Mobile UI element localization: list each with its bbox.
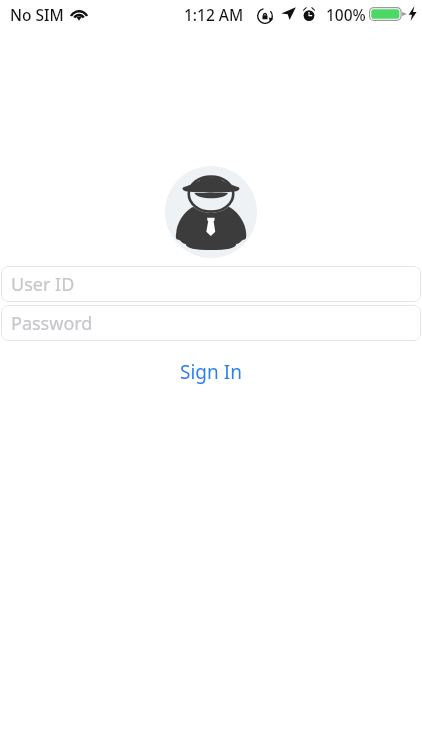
button[interactable]: Sign In [0,359,422,385]
staticText: Password [11,311,93,336]
button[interactable]: User ID [1,266,421,302]
button[interactable]: Password [1,305,421,341]
staticText: Sign In [180,359,242,385]
staticText: 1:12 AM [184,4,244,25]
staticText: User ID [11,272,75,297]
staticText: 100% [326,4,366,25]
staticText: No SIM [10,4,64,25]
